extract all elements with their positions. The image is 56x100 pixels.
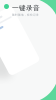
staticText: 一键录音 xyxy=(12,4,40,12)
staticText: 随时随地，轻松记录 xyxy=(12,13,39,16)
